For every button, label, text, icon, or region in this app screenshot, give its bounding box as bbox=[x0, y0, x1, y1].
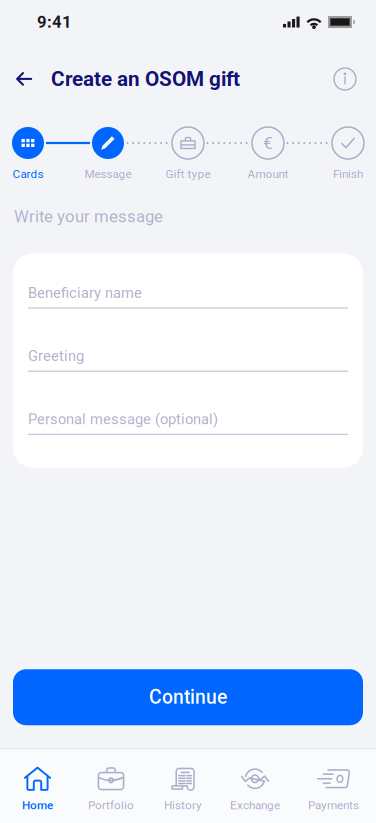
staticText: Payments bbox=[308, 798, 359, 812]
button[interactable]: History bbox=[147, 749, 219, 823]
staticText: Message bbox=[84, 167, 131, 181]
button[interactable]: Information bbox=[323, 57, 367, 101]
staticText: Create an OSOM gift bbox=[51, 67, 240, 91]
staticText: Cards bbox=[12, 167, 43, 181]
button[interactable]: Home bbox=[0, 749, 75, 823]
staticText: 9:41 bbox=[37, 12, 72, 32]
staticText: Exchange bbox=[230, 798, 280, 812]
button[interactable]: Exchange bbox=[219, 749, 291, 823]
staticText: Portfolio bbox=[88, 798, 134, 812]
staticText: Personal message (optional) bbox=[28, 411, 218, 428]
staticText: Amount bbox=[247, 167, 288, 181]
button[interactable]: Continue bbox=[13, 669, 363, 725]
button[interactable]: Back bbox=[2, 57, 46, 101]
button[interactable]: Payments bbox=[291, 749, 376, 823]
staticText: Finish bbox=[333, 167, 363, 181]
staticText: Write your message bbox=[14, 207, 163, 226]
button[interactable]: Portfolio bbox=[75, 749, 147, 823]
staticText: Gift type bbox=[165, 167, 210, 181]
staticText: € bbox=[263, 133, 273, 153]
staticText: Greeting bbox=[28, 347, 84, 365]
staticText: Continue bbox=[149, 686, 227, 709]
staticText: History bbox=[164, 798, 202, 812]
staticText: Home bbox=[22, 798, 53, 812]
staticText: Beneficiary name bbox=[28, 284, 142, 301]
